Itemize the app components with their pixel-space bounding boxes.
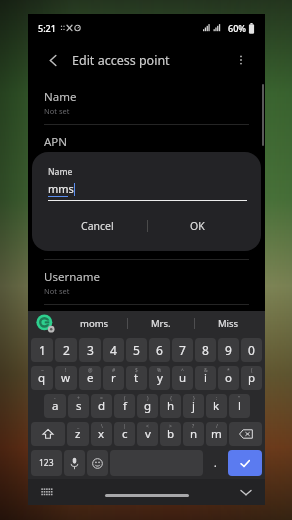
button[interactable]: | <box>114 422 135 446</box>
button[interactable]: Voice input <box>64 450 85 476</box>
button[interactable]: / <box>206 422 227 446</box>
button[interactable]: Backspace <box>229 422 262 446</box>
button[interactable]: Name <box>28 80 265 124</box>
button[interactable]: ( <box>241 366 262 390</box>
staticText: Not set <box>44 286 70 296</box>
button[interactable]: Emoji <box>87 450 108 476</box>
staticText: o <box>225 370 232 386</box>
button[interactable]: ! <box>55 366 77 390</box>
staticText: Mrs. <box>151 317 171 330</box>
button[interactable]: ( <box>114 394 135 418</box>
button[interactable]: } <box>183 394 204 418</box>
button[interactable]: - <box>44 394 66 418</box>
button[interactable]: 8 <box>195 338 216 362</box>
button[interactable]: $ <box>126 366 147 390</box>
button[interactable]: Miss <box>195 311 261 336</box>
staticText: " <box>238 395 241 402</box>
staticText: ^ <box>181 367 184 374</box>
button[interactable]: 1 <box>31 338 53 362</box>
button[interactable]: APN <box>28 125 265 169</box>
button[interactable]: : <box>206 394 227 418</box>
button[interactable]: + <box>68 394 89 418</box>
staticText: j <box>192 398 195 414</box>
button[interactable]: 9 <box>218 338 239 362</box>
button[interactable]: 123 <box>31 450 62 476</box>
staticText: x <box>98 426 105 442</box>
button[interactable]: ) <box>137 394 158 418</box>
button[interactable]: % <box>149 366 170 390</box>
button[interactable]: { <box>160 394 181 418</box>
button[interactable]: ~ <box>31 366 53 390</box>
button[interactable]: 4 <box>103 338 124 362</box>
staticText: ) <box>147 395 149 402</box>
staticText: APN <box>44 134 68 150</box>
staticText: a <box>52 398 59 414</box>
staticText: m <box>211 426 222 442</box>
staticText: ! <box>65 367 67 374</box>
button[interactable]: Hide keyboard <box>235 481 257 503</box>
button[interactable]: @ <box>79 366 101 390</box>
button[interactable]: 6 <box>149 338 170 362</box>
staticText: h <box>167 398 175 414</box>
staticText: z <box>75 426 81 442</box>
staticText: 5 <box>133 342 140 358</box>
button[interactable]: Shift <box>31 422 65 446</box>
staticText: 5:21 <box>38 22 56 34</box>
staticText: # <box>112 367 116 374</box>
button[interactable]: = <box>91 394 112 418</box>
button[interactable]: > <box>160 422 181 446</box>
button[interactable]: Done <box>228 450 262 476</box>
button[interactable]: . <box>205 450 226 476</box>
button[interactable]: 0 <box>241 338 262 362</box>
staticText: n <box>190 426 198 442</box>
staticText: 1 <box>39 342 46 358</box>
staticText: i <box>204 370 207 386</box>
button[interactable]: < <box>137 422 158 446</box>
button[interactable]: More options <box>229 48 253 72</box>
staticText: c <box>122 426 128 442</box>
button[interactable]: ? <box>183 422 204 446</box>
button[interactable]: Back <box>40 47 66 73</box>
button[interactable]: Username <box>28 260 265 304</box>
staticText: 60% <box>228 22 246 34</box>
staticText: g <box>144 398 152 414</box>
staticText: / <box>216 423 218 430</box>
button[interactable]: 7 <box>172 338 193 362</box>
staticText: Edit access point <box>72 52 170 69</box>
staticText: | <box>123 423 126 430</box>
staticText: mms <box>48 181 74 196</box>
staticText: : <box>216 395 218 402</box>
button[interactable]: 3 <box>79 338 101 362</box>
staticText: ? <box>192 423 195 430</box>
button[interactable]: " <box>229 394 250 418</box>
button[interactable]: & <box>195 366 216 390</box>
staticText: % <box>157 367 162 374</box>
button[interactable]: moms <box>62 311 127 336</box>
button[interactable]: \ <box>91 422 112 446</box>
button[interactable]: 5 <box>126 338 147 362</box>
staticText: Not set <box>44 151 70 161</box>
button[interactable]: _ <box>67 422 89 446</box>
staticText: Name <box>44 89 77 105</box>
button[interactable]: # <box>103 366 124 390</box>
button[interactable]: Proxy <box>28 170 265 214</box>
button[interactable]: Change keyboard <box>36 481 58 503</box>
staticText: moms <box>80 317 109 330</box>
button[interactable]: Cancel <box>48 213 147 239</box>
button[interactable]: 2 <box>55 338 77 362</box>
staticText: ~ <box>41 367 44 374</box>
staticText: 0 <box>248 342 255 358</box>
staticText: OK <box>190 219 205 233</box>
button[interactable]: ^ <box>172 366 193 390</box>
button[interactable]: Grammar assistant <box>28 311 62 336</box>
staticText: Cancel <box>81 219 114 233</box>
button[interactable]: OK <box>148 213 247 239</box>
button[interactable]: * <box>218 366 239 390</box>
button[interactable]: Port <box>28 215 265 259</box>
button[interactable]: Mrs. <box>128 311 194 336</box>
staticText: } <box>193 395 195 402</box>
staticText: 9 <box>225 342 232 358</box>
